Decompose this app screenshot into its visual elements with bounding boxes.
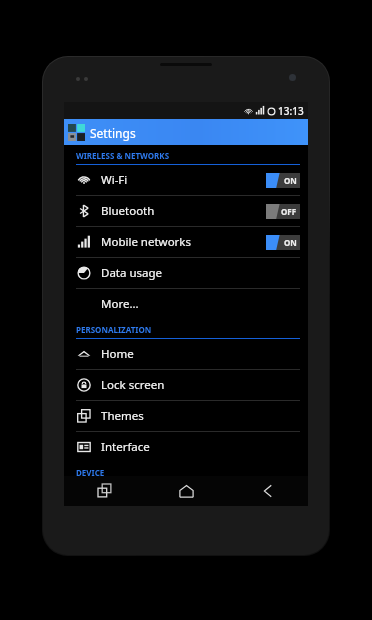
staticText: Themes xyxy=(101,408,144,424)
staticText: DEVICE xyxy=(76,467,105,476)
button[interactable]: Interface xyxy=(64,432,308,462)
staticText: PERSONALIZATION xyxy=(76,324,152,335)
button[interactable]: Data usage xyxy=(64,258,308,288)
button[interactable]: Home xyxy=(64,339,308,369)
staticText: Data usage xyxy=(101,265,163,281)
staticText: Home xyxy=(101,346,134,362)
staticText: Mobile networks xyxy=(101,234,266,250)
staticText: Wi-Fi xyxy=(101,172,266,188)
button[interactable]: Lock screen xyxy=(64,370,308,400)
staticText: ON xyxy=(284,237,297,248)
staticText: Interface xyxy=(101,439,150,455)
button[interactable]: Themes xyxy=(64,401,308,431)
button[interactable]: Settings xyxy=(64,119,308,145)
staticText: ON xyxy=(284,175,297,186)
button[interactable]: Toggle on xyxy=(266,235,300,250)
button[interactable]: More... xyxy=(64,289,308,319)
button[interactable]: Toggle off xyxy=(266,204,300,219)
staticText: 13:13 xyxy=(278,104,304,118)
staticText: Lock screen xyxy=(101,377,165,393)
button[interactable]: Mobile networks xyxy=(64,227,308,257)
staticText: More... xyxy=(101,296,139,312)
button[interactable]: Home xyxy=(146,476,227,506)
button[interactable]: Wi-Fi xyxy=(64,165,308,195)
button[interactable]: Back xyxy=(227,476,308,506)
staticText: OFF xyxy=(281,206,297,217)
staticText: WIRELESS & NETWORKS xyxy=(76,150,170,161)
staticText: Settings xyxy=(90,125,136,141)
staticText: Bluetooth xyxy=(101,203,266,219)
button[interactable]: Bluetooth xyxy=(64,196,308,226)
button[interactable]: Recents xyxy=(64,476,146,506)
button[interactable]: Toggle on xyxy=(266,173,300,188)
